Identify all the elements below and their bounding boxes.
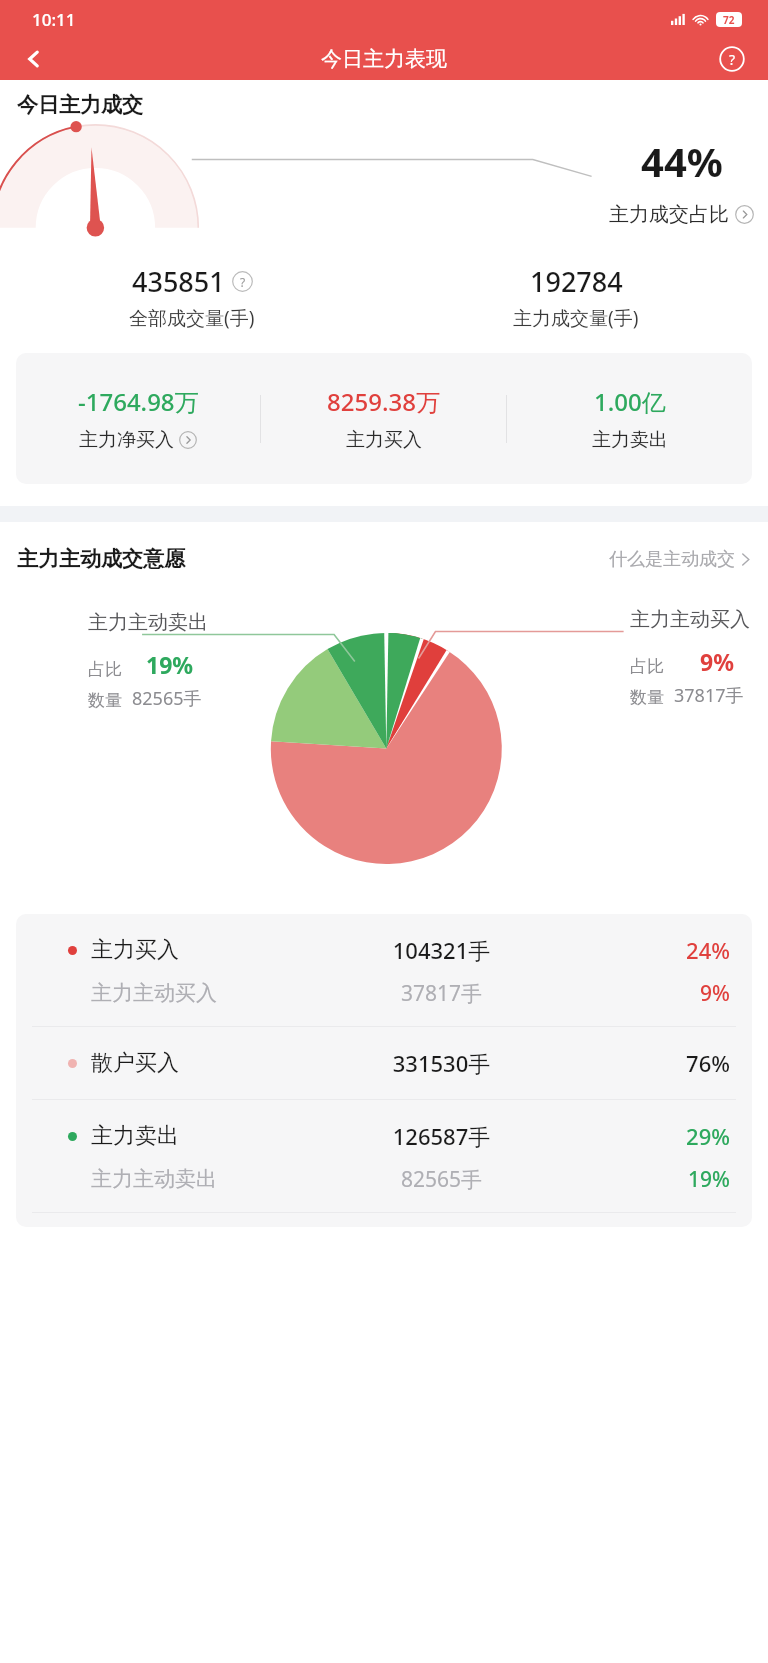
staticText: 9% (700, 646, 734, 677)
staticText: 10:11 (32, 8, 76, 31)
staticText: 82565手 (231, 1165, 652, 1194)
staticText: -1764.98万 (78, 385, 199, 418)
button[interactable]: Info (232, 271, 253, 292)
staticText: 19% (652, 1165, 730, 1194)
staticText: 主力成交占比 (609, 202, 729, 227)
staticText: 今日主力表现 (321, 46, 447, 72)
button[interactable]: 主力主动卖出 (16, 1158, 752, 1200)
staticText: 占比 (630, 656, 664, 677)
staticText: 数量 (88, 690, 122, 711)
button[interactable]: 主力买入 (16, 928, 752, 972)
staticText: 76% (652, 1048, 730, 1078)
button[interactable]: 主力卖出 (592, 428, 668, 452)
staticText: 散户买入 (91, 1049, 231, 1077)
staticText: 主力主动成交意愿 (17, 546, 185, 572)
button[interactable]: 什么是主动成交 (609, 548, 751, 571)
staticText: ? (729, 50, 736, 69)
staticText: 37817手 (231, 979, 652, 1008)
staticText: 1.00亿 (594, 385, 666, 418)
staticText: 全部成交量(手) (129, 305, 255, 331)
staticText: 占比 (88, 659, 122, 680)
button[interactable]: 主力成交占比 (609, 202, 754, 227)
staticText: 19% (146, 649, 194, 680)
staticText: 主力买入 (346, 428, 422, 452)
staticText: ? (240, 274, 246, 290)
staticText: 主力主动卖出 (88, 610, 208, 635)
staticText: 今日主力成交 (17, 92, 143, 118)
staticText: 8259.38万 (327, 385, 440, 418)
staticText: 44% (641, 134, 723, 188)
staticText: 24% (652, 935, 730, 965)
staticText: 331530手 (231, 1048, 652, 1078)
button[interactable]: 主力买入 (346, 428, 422, 452)
staticText: 主力主动买入 (91, 980, 231, 1006)
staticText: 29% (652, 1121, 730, 1151)
staticText: 主力卖出 (592, 428, 668, 452)
staticText: 9% (652, 979, 730, 1008)
staticText: 主力主动卖出 (91, 1166, 231, 1192)
button[interactable]: 主力主动买入 (16, 972, 752, 1014)
staticText: 主力成交量(手) (513, 305, 639, 331)
button[interactable]: Help (712, 39, 752, 79)
staticText: 什么是主动成交 (609, 548, 735, 571)
staticText: 192784 (530, 263, 623, 300)
staticText: 37817手 (674, 683, 744, 708)
staticText: 主力净买入 (79, 428, 174, 452)
staticText: 104321手 (231, 935, 652, 965)
staticText: 主力买入 (91, 936, 231, 964)
button[interactable]: 主力净买入 (79, 428, 197, 452)
staticText: 82565手 (132, 686, 202, 711)
staticText: 72 (723, 13, 735, 27)
button[interactable]: Back (14, 39, 54, 79)
staticText: 435851 (132, 263, 225, 300)
button[interactable]: 散户买入 (16, 1041, 752, 1085)
staticText: 126587手 (231, 1121, 652, 1151)
button[interactable]: 主力卖出 (16, 1114, 752, 1158)
staticText: 主力卖出 (91, 1122, 231, 1150)
staticText: 主力主动买入 (630, 607, 750, 632)
staticText: 数量 (630, 687, 664, 708)
